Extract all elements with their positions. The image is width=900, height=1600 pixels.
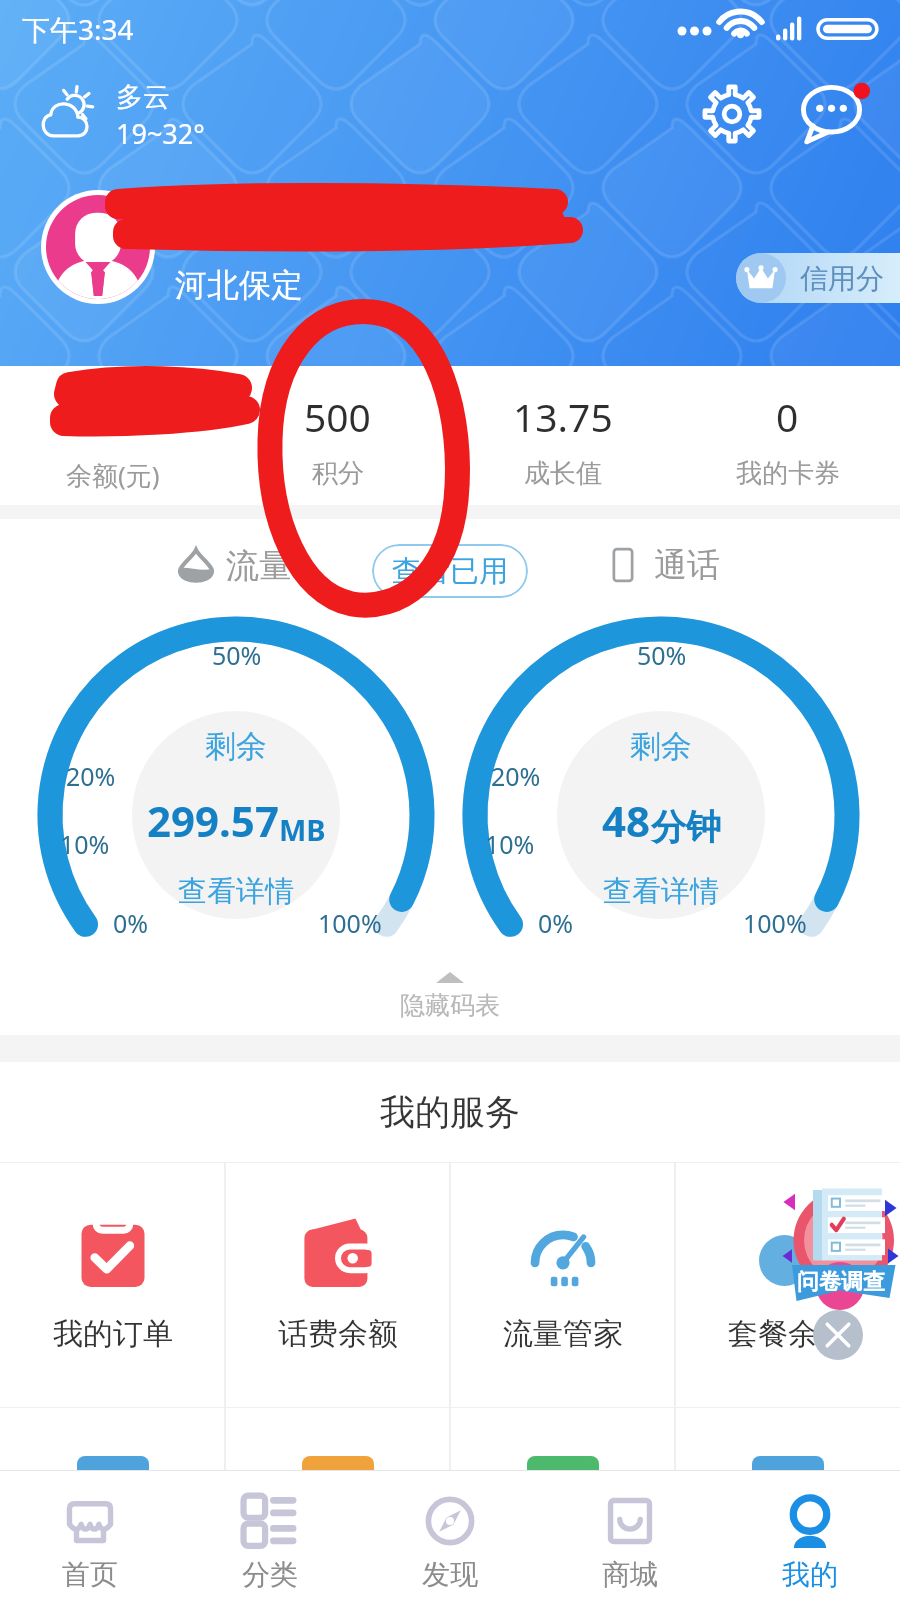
staticText: 通话 <box>654 544 720 586</box>
button[interactable]: 0 <box>675 366 900 505</box>
staticText: 分类 <box>242 1557 298 1592</box>
staticText: 50% <box>212 638 262 672</box>
button[interactable]: 查看已用 <box>372 544 528 598</box>
button[interactable]: 流量管家 <box>450 1163 675 1407</box>
button[interactable]: 流量 <box>178 545 292 587</box>
staticText: 剩余 <box>630 727 692 766</box>
button[interactable]: 我的订单 <box>0 1163 225 1407</box>
staticText: 分钟 <box>651 805 721 849</box>
button[interactable]: 话费余额 <box>225 1163 450 1407</box>
button[interactable]: 查看详情 <box>178 873 294 910</box>
button[interactable]: 13.75 <box>450 366 675 505</box>
staticText: 信用分 <box>800 261 884 296</box>
button[interactable] <box>450 1408 675 1470</box>
button[interactable]: Settings <box>692 74 772 154</box>
staticText: 0% <box>113 906 149 940</box>
staticText: 0.00 <box>74 390 152 443</box>
button[interactable] <box>675 1408 900 1470</box>
button[interactable]: Close ad <box>813 1310 863 1360</box>
staticText: 13.75 <box>513 390 613 443</box>
staticText: 我的 <box>782 1557 838 1592</box>
button[interactable]: 商城 <box>540 1471 720 1600</box>
staticText: 500 <box>304 390 371 443</box>
staticText: 发现 <box>422 1557 478 1592</box>
staticText: 我的服务 <box>380 1090 520 1134</box>
staticText: 问卷调查 <box>797 1268 885 1296</box>
staticText: 查看已用 <box>392 553 508 590</box>
button[interactable]: 隐藏码表 <box>0 972 900 1035</box>
staticText: 0% <box>538 906 574 940</box>
staticText: 余额(元) <box>66 457 160 493</box>
button[interactable]: 多云 <box>40 80 205 152</box>
button[interactable]: 查看详情 <box>603 873 719 910</box>
button[interactable]: 我的 <box>720 1471 900 1600</box>
staticText: 20% <box>491 759 541 793</box>
button[interactable] <box>225 1408 450 1470</box>
staticText: 话费余额 <box>278 1315 398 1353</box>
staticText: 100% <box>743 906 807 940</box>
staticText: 下午3:34 <box>22 10 134 48</box>
staticText: 我的订单 <box>53 1315 173 1353</box>
staticText: 20% <box>66 759 116 793</box>
staticText: 流量 <box>226 545 292 587</box>
button[interactable] <box>0 1408 225 1470</box>
staticText: 流量管家 <box>503 1315 623 1353</box>
staticText: 首页 <box>62 1557 118 1592</box>
staticText: 100% <box>318 906 382 940</box>
staticText: 积分 <box>312 457 364 490</box>
staticText: 剩余 <box>205 727 267 766</box>
button[interactable]: 0.00 <box>0 366 225 505</box>
staticText: 套餐余额 <box>728 1315 848 1353</box>
button[interactable]: 首页 <box>0 1471 180 1600</box>
button[interactable]: 500 <box>225 366 450 505</box>
staticText: 50% <box>637 638 687 672</box>
staticText: 我的卡券 <box>736 457 840 490</box>
button[interactable]: Profile avatar <box>46 195 150 299</box>
staticText: 河北保定 <box>175 265 303 305</box>
staticText: 多云 <box>116 80 170 114</box>
staticText: 19~32° <box>116 115 205 152</box>
button[interactable]: 发现 <box>360 1471 540 1600</box>
button[interactable]: 信用分 <box>736 253 900 303</box>
button[interactable]: Messages <box>794 70 882 158</box>
staticText: MB <box>279 810 326 849</box>
staticText: 0 <box>776 390 799 443</box>
staticText: 10% <box>60 827 110 861</box>
button[interactable]: 分类 <box>180 1471 360 1600</box>
button[interactable]: 套餐余额 <box>675 1163 900 1407</box>
staticText: 隐藏码表 <box>400 990 500 1021</box>
staticText: 商城 <box>602 1557 658 1592</box>
staticText: 48 <box>602 792 651 849</box>
staticText: 成长值 <box>524 457 602 490</box>
staticText: 299.57 <box>147 792 279 849</box>
staticText: 10% <box>485 827 535 861</box>
button[interactable]: 通话 <box>604 544 720 586</box>
